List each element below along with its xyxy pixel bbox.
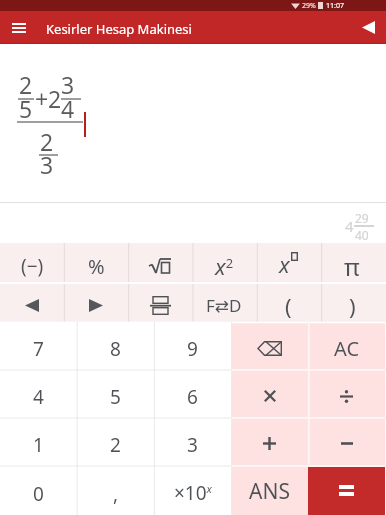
- button[interactable]: (−): [0, 243, 64, 283]
- button[interactable]: [308, 418, 385, 466]
- button[interactable]: %: [64, 243, 128, 283]
- button[interactable]: π: [320, 243, 384, 283]
- button[interactable]: x: [256, 243, 320, 283]
- button[interactable]: [0, 283, 64, 322]
- button[interactable]: ×10x: [154, 466, 231, 515]
- button[interactable]: [231, 322, 308, 370]
- button[interactable]: [128, 243, 192, 283]
- staticText: 2: [48, 83, 62, 114]
- button[interactable]: 0: [0, 466, 77, 515]
- staticText: ): [349, 291, 356, 321]
- button[interactable]: F⇄D: [192, 283, 256, 322]
- staticText: 29%: [302, 1, 316, 11]
- staticText: 9: [187, 336, 198, 362]
- staticText: +: [35, 83, 49, 114]
- button[interactable]: 1: [0, 418, 77, 466]
- button[interactable]: 5: [77, 370, 154, 418]
- staticText: 8: [110, 336, 121, 362]
- button[interactable]: [308, 370, 385, 418]
- button[interactable]: [231, 370, 308, 418]
- staticText: 4: [61, 93, 75, 124]
- staticText: 2: [40, 126, 54, 157]
- staticText: x: [279, 249, 290, 279]
- button[interactable]: 6: [154, 370, 231, 418]
- button[interactable]: AC: [308, 322, 385, 370]
- button[interactable]: [362, 21, 375, 34]
- staticText: (−): [21, 253, 44, 279]
- staticText: AC: [334, 335, 360, 362]
- staticText: 1: [33, 432, 44, 458]
- staticText: 3: [40, 149, 54, 180]
- button[interactable]: 2: [77, 418, 154, 466]
- staticText: x2: [215, 251, 234, 281]
- button[interactable]: 7: [0, 322, 77, 370]
- staticText: 3: [187, 432, 198, 458]
- staticText: 5: [110, 384, 121, 410]
- button[interactable]: [6, 16, 32, 40]
- button[interactable]: [308, 466, 385, 515]
- staticText: Kesirler Hesap Makinesi: [46, 20, 192, 38]
- staticText: 0: [33, 481, 44, 507]
- button[interactable]: 3: [154, 418, 231, 466]
- staticText: 2: [110, 432, 121, 458]
- staticText: F⇄D: [206, 294, 242, 317]
- staticText: 40: [355, 227, 369, 243]
- staticText: ANS: [249, 477, 290, 506]
- button[interactable]: ANS: [231, 466, 308, 515]
- button[interactable]: ,: [77, 466, 154, 515]
- button[interactable]: [128, 283, 192, 322]
- button[interactable]: (: [256, 283, 320, 322]
- staticText: π: [344, 250, 360, 283]
- button[interactable]: ): [320, 283, 384, 322]
- button[interactable]: [231, 418, 308, 466]
- staticText: 2: [19, 69, 33, 100]
- staticText: %: [88, 253, 105, 280]
- button[interactable]: 9: [154, 322, 231, 370]
- staticText: 6: [187, 384, 198, 410]
- button[interactable]: 4: [0, 370, 77, 418]
- button[interactable]: x2: [192, 243, 256, 283]
- staticText: 7: [33, 336, 44, 362]
- staticText: 3: [61, 69, 75, 100]
- staticText: ,: [113, 481, 119, 507]
- button[interactable]: [64, 283, 128, 322]
- staticText: 5: [19, 93, 33, 124]
- button[interactable]: 8: [77, 322, 154, 370]
- staticText: (: [285, 291, 292, 321]
- staticText: ×10x: [174, 480, 212, 506]
- staticText: 4: [345, 216, 354, 236]
- staticText: 11:07: [326, 1, 344, 11]
- staticText: 29: [355, 210, 369, 226]
- staticText: 4: [33, 384, 44, 410]
